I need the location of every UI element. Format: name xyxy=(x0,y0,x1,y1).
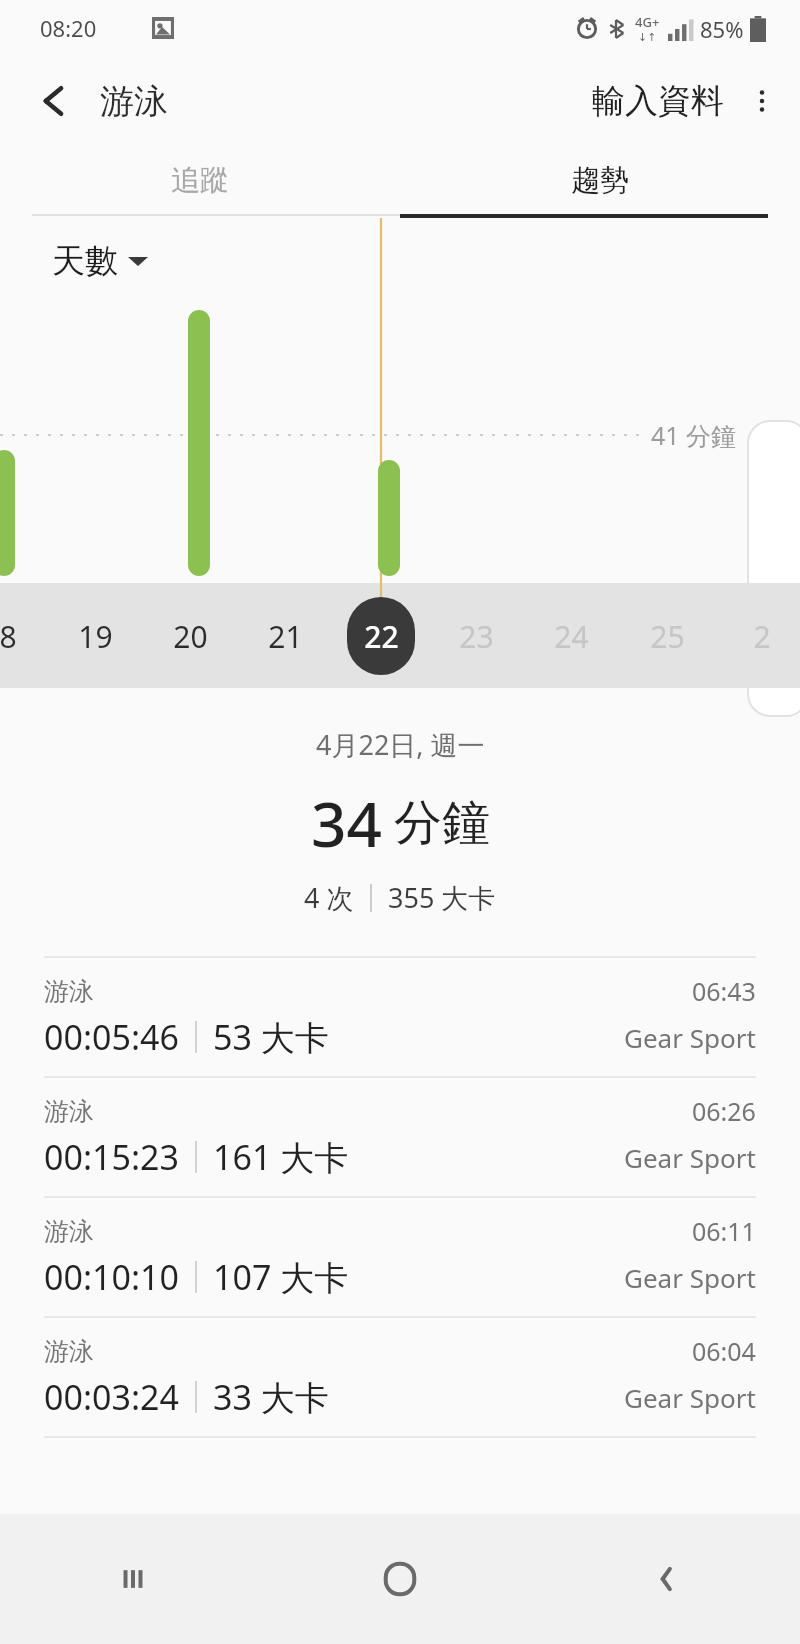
button[interactable]: 8 xyxy=(0,597,46,675)
staticText: 游泳 xyxy=(100,80,168,123)
staticText: 161 大卡 xyxy=(213,1134,349,1180)
staticText: 34 xyxy=(311,781,382,865)
staticText: 4G+ xyxy=(635,13,660,31)
button[interactable]: 22 xyxy=(343,597,419,675)
button[interactable] xyxy=(347,597,415,675)
button[interactable]: 19 xyxy=(57,597,133,675)
staticText: Gear Sport xyxy=(624,1140,756,1175)
button[interactable]: 追蹤 xyxy=(0,146,400,214)
staticText: 19 xyxy=(78,616,113,657)
button[interactable]: 25 xyxy=(629,597,705,675)
staticText: 游泳 xyxy=(44,1336,94,1367)
staticText: Gear Sport xyxy=(624,1020,756,1055)
staticText: 06:11 xyxy=(692,1214,756,1248)
staticText: 4月22日, 週一 xyxy=(316,726,485,763)
button[interactable]: 趨勢 xyxy=(400,146,800,214)
button[interactable]: 21 xyxy=(247,597,323,675)
staticText: 355 大卡 xyxy=(388,879,496,916)
button[interactable]: Back xyxy=(22,72,80,130)
staticText: 41 分鐘 xyxy=(651,418,737,452)
staticText: 23 xyxy=(459,616,494,657)
staticText: 20 xyxy=(173,616,208,657)
staticText: 107 大卡 xyxy=(213,1254,349,1300)
staticText: 00:03:24 xyxy=(44,1374,179,1420)
button[interactable]: 游泳 xyxy=(0,1318,800,1436)
staticText: 21 xyxy=(268,616,303,657)
staticText: 06:04 xyxy=(692,1334,756,1368)
button[interactable]: 20 xyxy=(152,597,228,675)
button[interactable]: 輸入資料 xyxy=(582,70,734,132)
staticText: 4 次 xyxy=(304,879,354,916)
staticText: 53 大卡 xyxy=(213,1014,329,1060)
staticText: 25 xyxy=(650,616,685,657)
staticText: 分鐘 xyxy=(394,793,490,853)
staticText: 22 xyxy=(364,616,399,657)
button[interactable]: 24 xyxy=(533,597,609,675)
staticText: 輸入資料 xyxy=(592,80,724,122)
staticText: 06:26 xyxy=(692,1094,756,1128)
staticText: 趨勢 xyxy=(571,162,629,199)
staticText: 2 xyxy=(753,616,771,657)
staticText: 00:15:23 xyxy=(44,1134,179,1180)
button[interactable]: 天數 xyxy=(52,240,148,282)
button[interactable]: Recents xyxy=(0,1514,266,1644)
button[interactable]: More options xyxy=(734,73,790,129)
button[interactable]: Back xyxy=(533,1514,800,1644)
staticText: 天數 xyxy=(52,240,118,282)
staticText: 33 大卡 xyxy=(213,1374,329,1420)
staticText: 追蹤 xyxy=(171,162,229,199)
staticText: 游泳 xyxy=(44,976,94,1007)
staticText: Gear Sport xyxy=(624,1380,756,1415)
staticText: 00:10:10 xyxy=(44,1254,179,1300)
button[interactable]: 23 xyxy=(438,597,514,675)
staticText: 08:20 xyxy=(40,13,97,43)
button[interactable]: 游泳 xyxy=(0,1078,800,1196)
staticText: 06:43 xyxy=(692,974,756,1008)
staticText: Gear Sport xyxy=(624,1260,756,1295)
staticText: 8 xyxy=(0,616,17,657)
button[interactable]: 游泳 xyxy=(0,1198,800,1316)
button[interactable]: Home xyxy=(266,1514,533,1644)
staticText: 85% xyxy=(700,14,744,44)
staticText: 游泳 xyxy=(44,1096,94,1127)
staticText: ↓↑ xyxy=(638,31,657,44)
staticText: 24 xyxy=(554,616,589,657)
staticText: 游泳 xyxy=(44,1216,94,1247)
button[interactable]: 2 xyxy=(724,597,800,675)
button[interactable]: 游泳 xyxy=(0,958,800,1076)
staticText: 00:05:46 xyxy=(44,1014,179,1060)
